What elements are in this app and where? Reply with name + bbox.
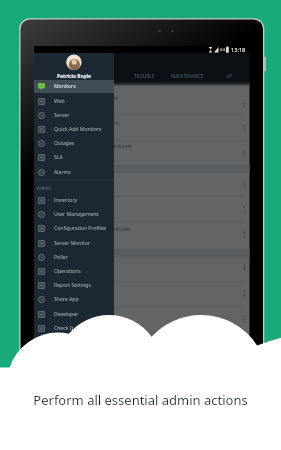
button[interactable]: Patricia Boyle — [34, 72, 114, 80]
staticText: Developer — [54, 311, 79, 318]
staticText: m — [114, 95, 119, 101]
staticText: Share App — [54, 296, 79, 303]
staticText: dd.com — [114, 226, 131, 232]
button[interactable]: SLA — [34, 151, 114, 164]
staticText: Server Monitor — [54, 240, 90, 247]
button[interactable]: Web — [34, 95, 114, 108]
staticText: Web — [54, 98, 65, 105]
staticText: eck.com — [114, 143, 132, 149]
button[interactable]: Server Monitor — [34, 237, 114, 250]
staticText: Quick Add Monitors — [54, 126, 102, 133]
staticText: rn — [114, 120, 119, 126]
button[interactable]: Quick Add Monitors — [34, 123, 114, 136]
staticText: UP — [226, 73, 233, 79]
staticText: 13:18 — [231, 46, 246, 54]
staticText: SLA — [54, 154, 63, 161]
button[interactable]: User Management — [34, 208, 114, 221]
button[interactable]: Inventory — [34, 194, 114, 207]
button[interactable]: Configuration Profiles — [34, 222, 114, 235]
button[interactable]: Server — [34, 109, 114, 122]
button[interactable]: Share App — [34, 293, 114, 306]
button[interactable]: Check It — [34, 322, 114, 335]
button[interactable]: Monitors — [34, 80, 114, 93]
staticText: Admin — [37, 185, 52, 191]
staticText: Monitors — [54, 83, 76, 90]
staticText: User Management — [54, 211, 99, 218]
staticText: TROUBLE — [134, 73, 155, 79]
staticText: Patricia Boyle — [57, 73, 92, 80]
staticText: Alarms — [54, 169, 71, 176]
staticText: Outages — [54, 140, 75, 147]
staticText: MAINTENANCE — [171, 73, 204, 79]
staticText: Inventory — [54, 197, 78, 204]
staticText: Operations — [54, 268, 81, 275]
button[interactable]: Outages — [34, 137, 114, 150]
staticText: Report Settings — [54, 282, 91, 289]
button[interactable]: Alarms — [34, 166, 114, 179]
button[interactable]: Developer — [34, 308, 114, 321]
button[interactable]: Report Settings — [34, 279, 114, 292]
staticText: Server — [54, 112, 70, 119]
staticText: Check It — [54, 325, 74, 332]
button[interactable]: TROUBLE — [104, 71, 184, 81]
staticText: Perform all essential admin actions — [33, 391, 248, 409]
button[interactable]: UP — [189, 71, 269, 81]
staticText: Poller — [54, 254, 68, 261]
button[interactable]: MAINTENANCE — [147, 71, 227, 81]
button[interactable]: Perform all essential admin actions — [0, 391, 281, 409]
button[interactable]: Poller — [34, 251, 114, 264]
staticText: Configuration Profiles — [54, 225, 107, 232]
button[interactable]: Operations — [34, 265, 114, 278]
